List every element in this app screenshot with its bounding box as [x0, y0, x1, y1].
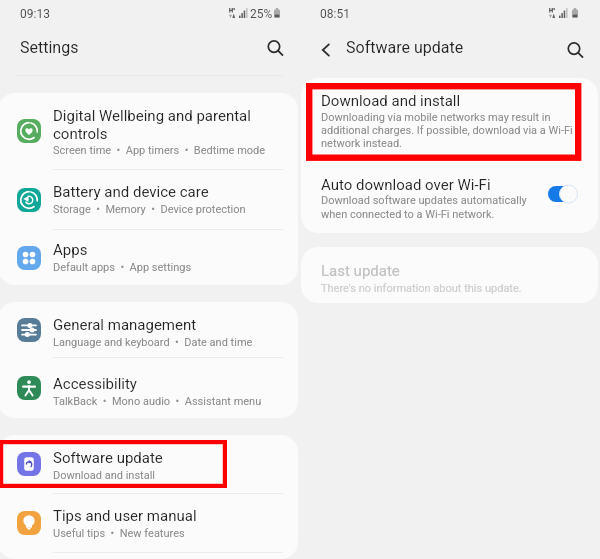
button[interactable]: Navigate up — [313, 37, 339, 63]
staticText: 09:13 — [20, 7, 50, 21]
staticText: Settings — [20, 38, 79, 57]
staticText: General management — [53, 316, 197, 334]
staticText: Download and install — [321, 92, 461, 110]
staticText: Downloading via mobile networks may resu… — [321, 111, 573, 150]
staticText: Download and install — [53, 469, 156, 482]
staticText: 25% — [250, 7, 273, 21]
staticText: 08:51 — [320, 7, 350, 21]
button[interactable]: Battery and device care — [0, 170, 298, 229]
staticText: Tips and user manual — [53, 507, 197, 525]
staticText: Useful tips • New features — [53, 527, 185, 540]
staticText: Default apps • App settings — [53, 261, 192, 274]
button[interactable]: Tips and user manual — [0, 494, 298, 552]
staticText: Storage • Memory • Device protection — [53, 203, 246, 216]
staticText: Apps — [53, 241, 88, 259]
staticText: Download software updates automatically … — [321, 194, 527, 221]
button[interactable]: Last update — [301, 247, 598, 303]
staticText: TalkBack • Mono audio • Assistant menu — [53, 395, 262, 408]
staticText: Digital Wellbeing and parental controls — [53, 107, 251, 142]
staticText: Software update — [346, 38, 464, 57]
staticText: There's no information about this update… — [321, 282, 522, 295]
staticText: Software update — [53, 449, 163, 467]
button[interactable]: Accessibility — [0, 358, 298, 418]
button[interactable]: Auto download over Wi-Fi — [301, 155, 598, 233]
button[interactable]: General management — [0, 302, 298, 357]
button[interactable]: Digital Wellbeing and parental controls — [0, 93, 298, 169]
button[interactable]: Apps — [0, 230, 298, 285]
staticText: Language and keyboard • Date and time — [53, 336, 253, 349]
button[interactable]: Download and install — [301, 78, 598, 155]
button[interactable]: Search — [262, 35, 288, 61]
staticText: Accessibility — [53, 375, 137, 393]
staticText: Screen time • App timers • Bedtime mode — [53, 144, 266, 157]
staticText: Auto download over Wi-Fi — [321, 176, 491, 194]
button[interactable]: Search — [562, 37, 588, 63]
staticText: Last update — [321, 262, 400, 280]
staticText: Battery and device care — [53, 183, 209, 201]
button[interactable]: Auto download over Wi-Fi — [547, 184, 580, 204]
button[interactable]: Software update — [0, 435, 298, 493]
